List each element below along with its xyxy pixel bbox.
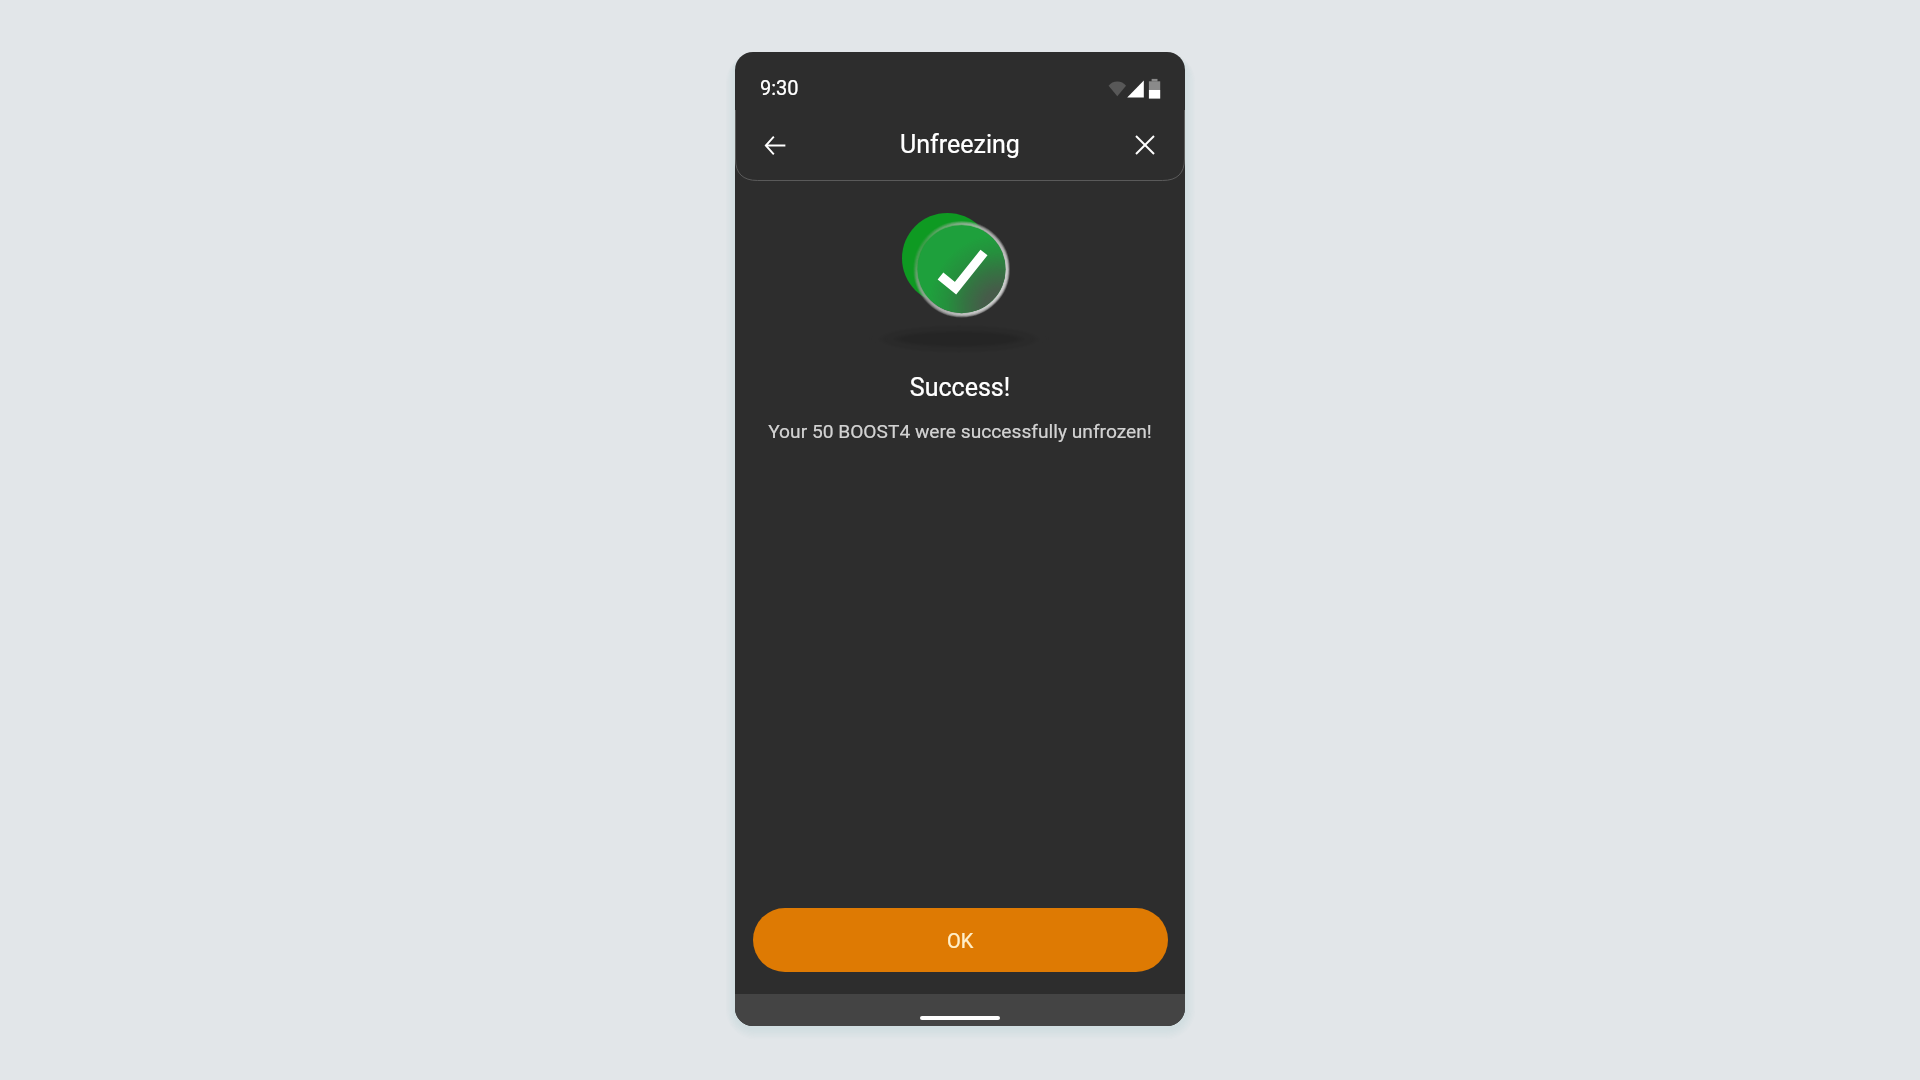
staticText: OK	[947, 929, 974, 952]
button[interactable]: Close	[1123, 123, 1167, 167]
button[interactable]: Back	[753, 123, 797, 167]
staticText: Success!	[735, 373, 1185, 402]
staticText: 9:30	[760, 76, 799, 99]
button[interactable]: OK	[753, 908, 1168, 972]
staticText: Your 50 BOOST4 were successfully unfroze…	[735, 420, 1185, 443]
staticText: Unfreezing	[900, 130, 1020, 159]
